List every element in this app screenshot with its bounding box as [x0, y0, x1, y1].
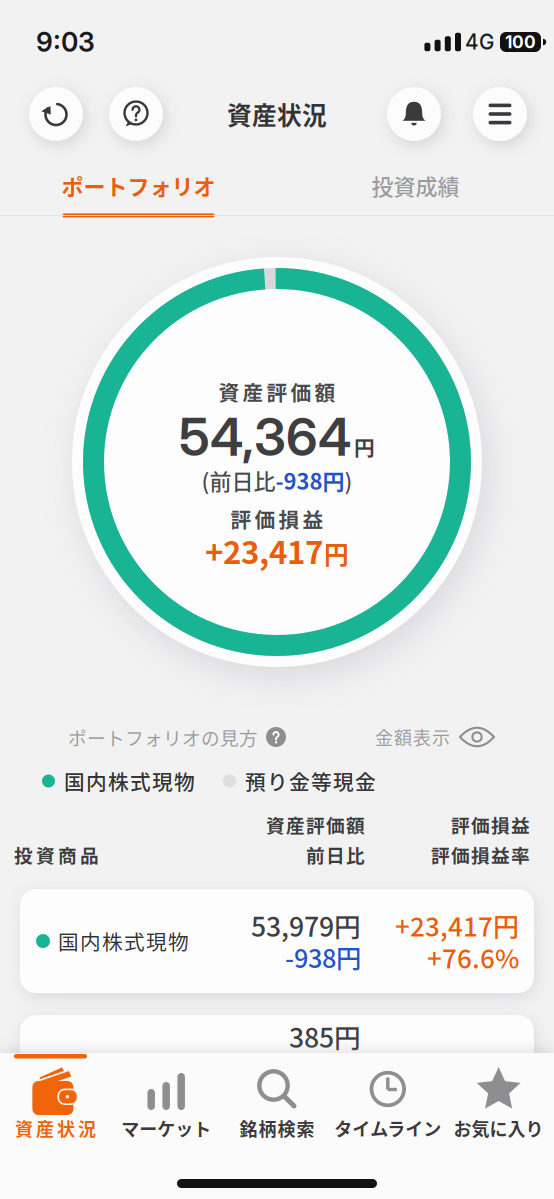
- staticText: (前日比: [201, 464, 275, 496]
- staticText: +23,417円: [395, 906, 519, 944]
- staticText: 資 産 評 価 額: [266, 811, 365, 838]
- staticText: 53,979円: [251, 906, 361, 944]
- staticText: 4G: [465, 29, 494, 54]
- button[interactable]: 投資成績: [277, 164, 554, 215]
- staticText: 385円: [289, 1017, 361, 1055]
- staticText: -938円: [275, 464, 344, 496]
- button[interactable]: ポートフォリオの見方: [68, 723, 286, 750]
- staticText: 国 内 株 式 現 物: [64, 766, 195, 796]
- staticText: -938円: [285, 939, 361, 975]
- staticText: タイムライン: [334, 1115, 441, 1141]
- staticText: 評 価 損 益: [230, 504, 323, 534]
- button[interactable]: お知らせ: [387, 87, 441, 141]
- staticText: 投資成績: [371, 170, 459, 201]
- staticText: 100: [505, 31, 536, 52]
- staticText: 投 資 商 品: [14, 841, 99, 868]
- staticText: ポートフォリオの見方: [68, 723, 258, 750]
- button[interactable]: 資 産 状 況: [0, 1067, 111, 1141]
- staticText: 前 日 比: [306, 841, 365, 868]
- staticText: 資 産 評 価 額: [218, 377, 335, 407]
- button[interactable]: ポートフォリオ: [0, 164, 277, 215]
- staticText: 金 額 表 示: [375, 724, 450, 750]
- staticText: +76.6%: [427, 938, 519, 976]
- button[interactable]: マーケット: [111, 1067, 222, 1141]
- staticText: ポートフォリオ: [61, 170, 215, 201]
- staticText: マーケット: [121, 1115, 211, 1141]
- button[interactable]: タイムライン: [332, 1067, 443, 1141]
- staticText: 銘 柄 検 索: [239, 1115, 314, 1141]
- staticText: 預 り 金 等 現 金: [245, 766, 376, 796]
- staticText: ): [344, 464, 352, 496]
- staticText: お気に入り: [454, 1115, 544, 1141]
- staticText: 資 産 状 況: [15, 1115, 96, 1141]
- button[interactable]: メニュー: [473, 87, 527, 141]
- staticText: 円: [354, 432, 375, 462]
- button[interactable]: 金額表示: [375, 724, 496, 750]
- staticText: 資産状況: [227, 96, 327, 132]
- button[interactable]: 銘 柄 検 索: [222, 1067, 332, 1141]
- staticText: 54,364: [179, 405, 351, 468]
- staticText: 9:03: [36, 26, 95, 58]
- staticText: 評 価 損 益 率: [431, 841, 530, 868]
- button[interactable]: 更新: [29, 87, 83, 141]
- staticText: 国 内 株 式 現 物: [58, 926, 189, 956]
- button[interactable]: 385円: [20, 1015, 534, 1119]
- staticText: +23,417: [205, 528, 323, 573]
- button[interactable]: ヘルプ: [109, 87, 163, 141]
- staticText: 評 価 損 益: [451, 811, 530, 838]
- button[interactable]: お気に入り: [443, 1067, 554, 1141]
- button[interactable]: 国 内 株 式 現 物: [20, 889, 534, 993]
- staticText: 円: [324, 535, 349, 571]
